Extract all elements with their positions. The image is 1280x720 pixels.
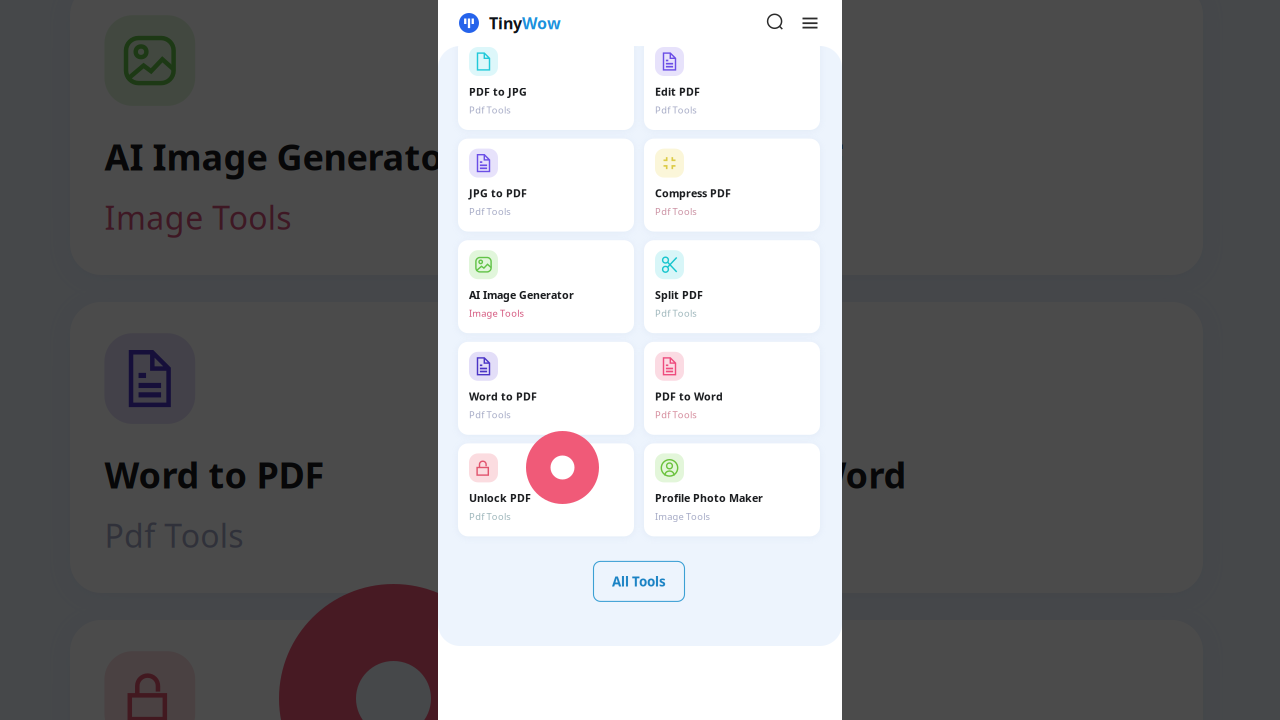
button[interactable]: All Tools — [593, 561, 684, 601]
staticText: Split PDF — [687, 133, 845, 180]
button[interactable]: PDF to Word — [644, 342, 820, 435]
staticText: JPG to PDF — [469, 186, 527, 200]
staticText: All Tools — [612, 572, 666, 590]
staticText: Image Tools — [655, 510, 709, 522]
staticText: Pdf Tools — [687, 196, 825, 238]
staticText: Compress PDF — [655, 186, 731, 200]
staticText: AI Image Generator — [104, 133, 459, 180]
staticText: Pdf Tools — [655, 205, 696, 218]
staticText: Word to PDF — [469, 389, 537, 403]
staticText: Split PDF — [655, 288, 703, 302]
staticText: Pdf Tools — [655, 408, 696, 421]
staticText: PDF to Word — [687, 451, 907, 498]
staticText: Pdf Tools — [469, 205, 510, 218]
staticText: Edit PDF — [655, 84, 700, 99]
button[interactable]: Search — [758, 8, 788, 38]
staticText: Pdf Tools — [687, 514, 825, 556]
button[interactable]: Word to PDF — [458, 342, 634, 435]
staticText: Pdf Tools — [655, 104, 696, 116]
button[interactable]: PDF to Word — [652, 302, 1203, 593]
staticText: PDF to JPG — [469, 84, 527, 99]
staticText: AI Image Generator — [469, 288, 574, 302]
staticText: Tiny — [489, 12, 522, 34]
staticText: Unlock PDF — [469, 491, 531, 505]
button[interactable]: Edit PDF — [644, 37, 820, 130]
staticText: Pdf Tools — [469, 510, 510, 522]
staticText: Image Tools — [104, 196, 291, 238]
button[interactable]: Unlock PDF — [70, 620, 621, 720]
staticText: Wow — [522, 12, 561, 34]
button[interactable]: Profile Photo Maker — [644, 443, 820, 536]
staticText: Image Tools — [469, 307, 523, 319]
button[interactable]: Unlock PDF — [458, 443, 634, 536]
button[interactable]: Split PDF — [652, 0, 1203, 275]
button[interactable]: Compress PDF — [644, 139, 820, 232]
staticText: Word to PDF — [104, 451, 324, 498]
button[interactable]: JPG to PDF — [458, 139, 634, 232]
button[interactable]: AI Image Generator — [70, 0, 621, 275]
button[interactable]: AI Image Generator — [458, 240, 634, 333]
staticText: PDF to Word — [655, 389, 723, 403]
staticText: Pdf Tools — [469, 408, 510, 421]
staticText: Pdf Tools — [104, 514, 243, 556]
button[interactable]: Menu — [796, 9, 824, 37]
staticText: Profile Photo Maker — [655, 491, 763, 505]
button[interactable]: Split PDF — [644, 240, 820, 333]
button[interactable]: PDF to JPG — [458, 37, 634, 130]
staticText: Pdf Tools — [655, 307, 696, 319]
staticText: Pdf Tools — [469, 104, 510, 116]
button[interactable]: Word to PDF — [70, 302, 621, 593]
button[interactable]: Profile Photo Maker — [652, 620, 1203, 720]
